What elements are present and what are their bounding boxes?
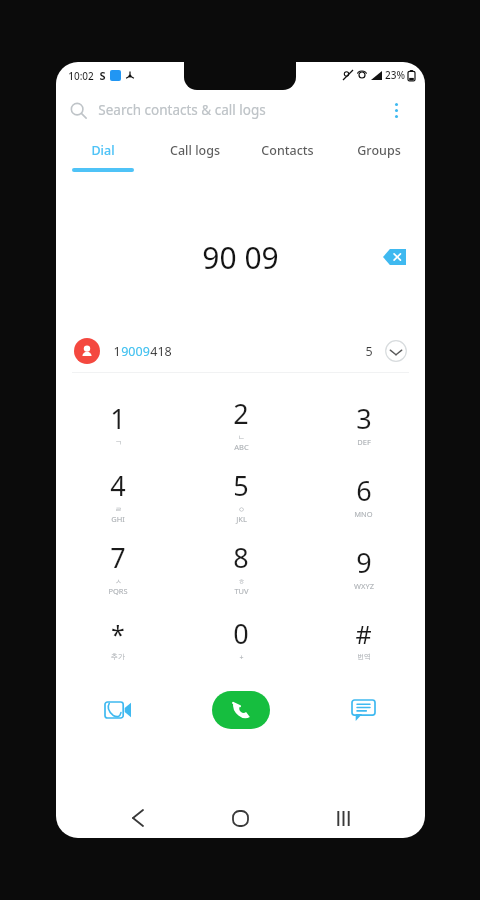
button[interactable]: 4 xyxy=(56,459,179,531)
staticText: * xyxy=(111,617,125,651)
button[interactable]: * xyxy=(56,603,179,675)
button[interactable]: More options xyxy=(381,95,411,125)
staticText: ㄱ xyxy=(115,438,122,447)
staticText: GHI xyxy=(111,514,125,524)
button[interactable]: Video call xyxy=(56,681,179,739)
staticText: ㅇ xyxy=(238,505,245,514)
button[interactable]: # xyxy=(302,603,425,675)
button[interactable]: Backspace xyxy=(377,240,411,274)
button[interactable]: 0 xyxy=(179,603,302,675)
staticText: 10:02 xyxy=(68,69,94,83)
staticText: PQRS xyxy=(108,586,128,596)
button[interactable]: Search contacts & call logs xyxy=(70,88,381,132)
button[interactable]: 2 xyxy=(179,387,302,459)
staticText: 5 xyxy=(233,467,249,504)
button[interactable]: Home xyxy=(189,798,292,838)
button[interactable]: Message xyxy=(302,681,425,739)
staticText: 23% xyxy=(385,68,405,82)
staticText: 번역 xyxy=(357,652,371,661)
button[interactable]: Back xyxy=(86,798,189,838)
staticText: 2 xyxy=(233,395,249,432)
staticText: 1 xyxy=(113,343,121,360)
staticText: Contacts xyxy=(261,142,314,159)
staticText: TUV xyxy=(234,586,249,596)
staticText: MNO xyxy=(354,509,373,519)
button[interactable]: 6 xyxy=(302,459,425,531)
staticText: 4 xyxy=(110,467,126,504)
staticText: WXYZ xyxy=(354,581,374,591)
button[interactable]: 7 xyxy=(56,531,179,603)
staticText: 90 09 xyxy=(202,237,279,278)
staticText: DEF xyxy=(357,437,371,447)
staticText: + xyxy=(239,653,244,663)
button[interactable]: Call xyxy=(212,691,270,729)
staticText: 추가 xyxy=(111,652,125,661)
button[interactable]: 8 xyxy=(179,531,302,603)
staticText: 3 xyxy=(356,400,372,437)
button[interactable]: Recents xyxy=(292,798,395,838)
staticText: Dial xyxy=(91,142,115,159)
button[interactable]: Groups xyxy=(333,132,425,168)
staticText: ㅅ xyxy=(115,577,122,586)
staticText: 6 xyxy=(356,472,372,509)
staticText: 5 xyxy=(365,343,373,360)
staticText: 1 xyxy=(110,400,126,437)
staticText: ㄹ xyxy=(115,505,122,514)
staticText: S xyxy=(99,68,106,83)
button[interactable]: Contacts xyxy=(241,132,333,168)
staticText: 9 xyxy=(356,544,372,581)
staticText: Search contacts & call logs xyxy=(98,101,266,119)
staticText: 7 xyxy=(110,539,126,576)
staticText: 9009 xyxy=(121,343,150,360)
staticText: JKL xyxy=(236,514,247,524)
button[interactable]: Expand xyxy=(385,340,407,362)
button[interactable]: 9 xyxy=(302,531,425,603)
button[interactable]: Call logs xyxy=(149,132,241,168)
button[interactable]: Dial xyxy=(56,132,149,168)
button[interactable]: 1 xyxy=(56,387,179,459)
staticText: # xyxy=(355,617,372,651)
button[interactable]: 3 xyxy=(302,387,425,459)
staticText: 0 xyxy=(233,615,249,652)
staticText: 418 xyxy=(150,343,172,360)
button[interactable]: 5 xyxy=(179,459,302,531)
staticText: 8 xyxy=(233,539,249,576)
staticText: Groups xyxy=(357,142,401,159)
staticText: ㅎ xyxy=(238,577,245,586)
button[interactable]: 1 xyxy=(56,330,425,372)
staticText: Call logs xyxy=(170,142,220,159)
staticText: ABC xyxy=(234,442,249,452)
staticText: ㄴ xyxy=(238,433,245,442)
